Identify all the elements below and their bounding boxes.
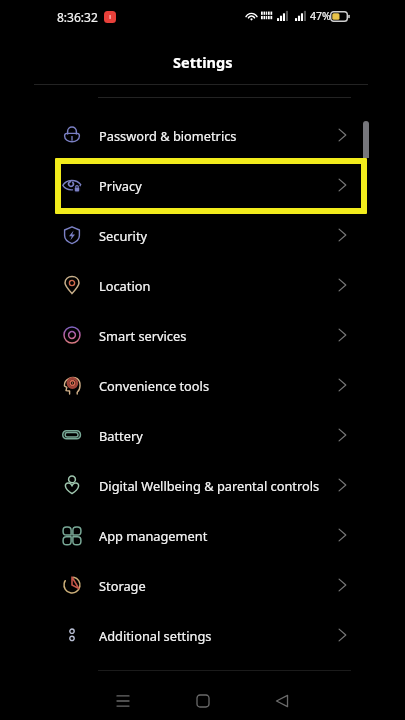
staticText: 47% (310, 9, 331, 23)
staticText: Smart services (99, 327, 187, 344)
button[interactable]: Home (184, 682, 221, 719)
staticText: Digital Wellbeing & parental controls (99, 477, 320, 494)
button[interactable]: Privacy (0, 160, 405, 210)
staticText: Password & biometrics (99, 127, 237, 144)
button[interactable]: App management (0, 510, 405, 560)
staticText: 8:36:32 (57, 9, 98, 25)
staticText: Storage (99, 577, 146, 594)
button[interactable]: Convenience tools (0, 360, 405, 410)
button[interactable]: Battery (0, 410, 405, 460)
staticText: Additional settings (99, 627, 212, 644)
staticText: Convenience tools (99, 377, 210, 394)
button[interactable]: Additional settings (0, 610, 405, 660)
button[interactable]: Smart services (0, 310, 405, 360)
button[interactable]: Security (0, 210, 405, 260)
button[interactable]: Back (263, 682, 300, 719)
staticText: Settings (173, 52, 233, 72)
button[interactable]: Location (0, 260, 405, 310)
button[interactable]: Digital Wellbeing & parental controls (0, 460, 405, 510)
staticText: Privacy (99, 177, 142, 194)
button[interactable]: Recents (104, 682, 141, 719)
staticText: App management (99, 527, 208, 544)
button[interactable]: Password & biometrics (0, 110, 405, 160)
staticText: Security (99, 227, 148, 244)
staticText: Location (99, 277, 151, 294)
button[interactable]: Storage (0, 560, 405, 610)
staticText: Battery (99, 427, 143, 444)
